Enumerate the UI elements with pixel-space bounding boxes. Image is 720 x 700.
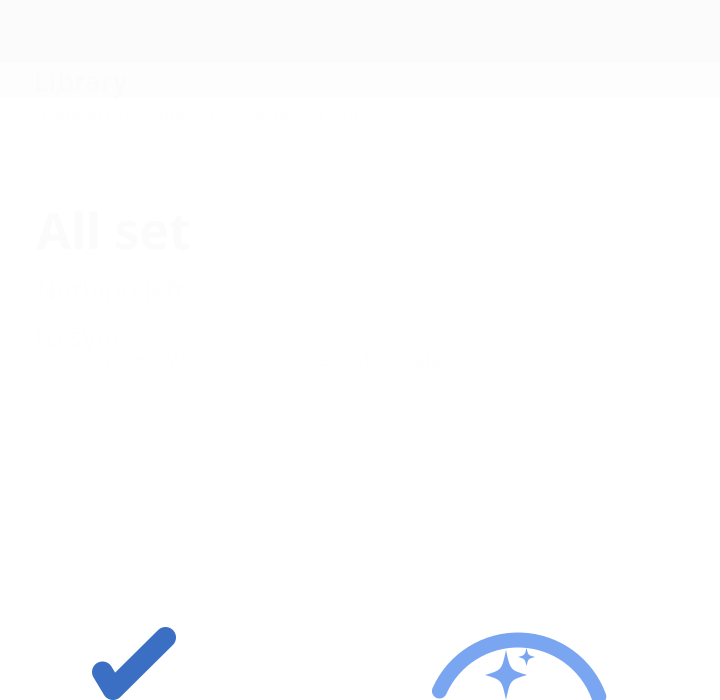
button[interactable]: Up to date — [90, 627, 190, 700]
button[interactable]: Enhance — [428, 620, 618, 700]
